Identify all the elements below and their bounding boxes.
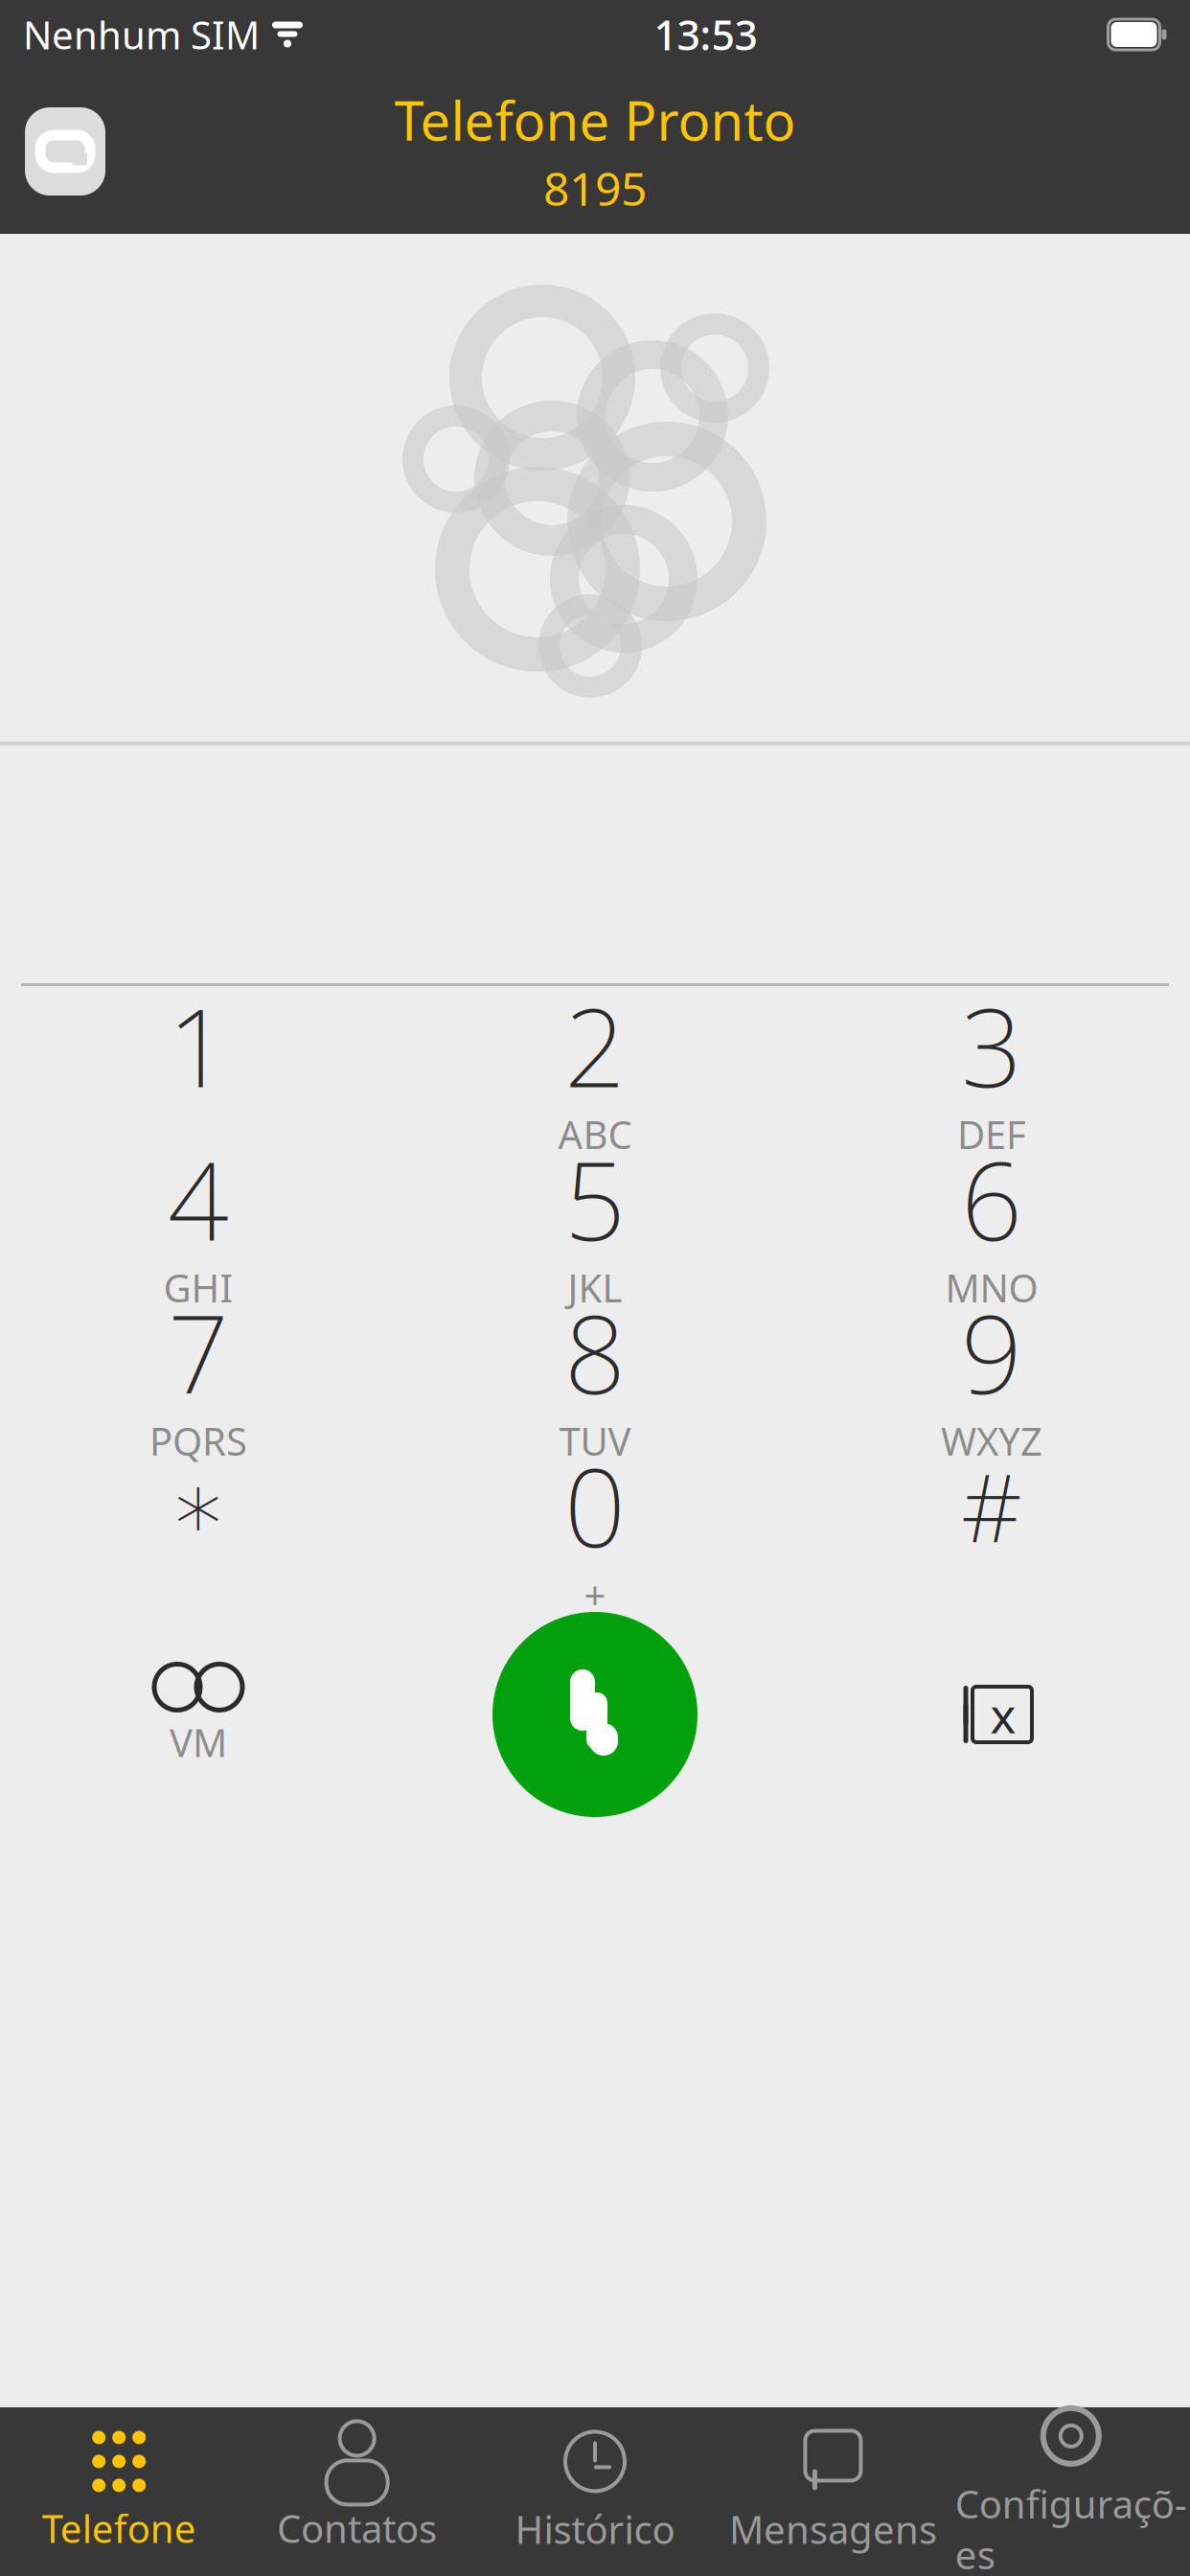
staticText: 9 xyxy=(961,1281,1022,1423)
staticText: MNO xyxy=(945,1262,1038,1313)
button[interactable]: Contatos xyxy=(238,2410,476,2573)
staticText: GHI xyxy=(163,1262,233,1313)
staticText: 7 xyxy=(168,1281,229,1423)
button[interactable]: 7 xyxy=(0,1293,397,1446)
button[interactable]: Ligar xyxy=(397,1599,793,1829)
staticText: 1 xyxy=(168,974,229,1117)
staticText: ∗ xyxy=(169,1452,228,1559)
staticText: Histórico xyxy=(515,2504,675,2554)
staticText: TUV xyxy=(559,1415,631,1466)
staticText: PQRS xyxy=(149,1415,247,1466)
staticText: 3 xyxy=(961,974,1022,1117)
staticText: ABC xyxy=(558,1109,632,1159)
button[interactable]: 4 xyxy=(0,1139,397,1293)
staticText: Contatos xyxy=(277,2503,437,2553)
staticText: 8 xyxy=(564,1281,626,1423)
button[interactable]: ∗ xyxy=(0,1446,397,1599)
button[interactable]: 1 xyxy=(0,986,397,1139)
button[interactable]: Correio de voz xyxy=(0,1619,397,1810)
button[interactable]: 5 xyxy=(397,1139,793,1293)
staticText: x xyxy=(990,1682,1016,1747)
staticText: 5 xyxy=(564,1128,626,1270)
staticText: 8195 xyxy=(543,157,647,218)
button[interactable]: 9 xyxy=(793,1293,1190,1446)
staticText: Telefone xyxy=(42,2503,196,2553)
button[interactable]: Conta xyxy=(19,105,111,197)
staticText: 6 xyxy=(961,1128,1022,1270)
staticText: DEF xyxy=(957,1109,1026,1159)
button[interactable]: 6 xyxy=(793,1139,1190,1293)
staticText: Mensagens xyxy=(729,2504,937,2554)
staticText: VM xyxy=(170,1717,227,1768)
staticText: Nenhum SIM xyxy=(23,9,260,60)
button[interactable]: 3 xyxy=(793,986,1190,1139)
button[interactable]: 2 xyxy=(397,986,793,1139)
button[interactable]: Apagar xyxy=(793,1619,1190,1810)
staticText: 13:53 xyxy=(654,7,757,62)
button[interactable]: Histórico xyxy=(476,2410,714,2573)
button[interactable]: Mensagens xyxy=(714,2410,952,2573)
staticText: 4 xyxy=(168,1128,229,1270)
staticText: 2 xyxy=(564,974,626,1117)
staticText: WXYZ xyxy=(941,1415,1042,1466)
button[interactable]: Telefone xyxy=(0,2410,238,2573)
staticText: Telefone Pronto xyxy=(394,84,796,156)
button[interactable]: 0 xyxy=(397,1446,793,1599)
staticText: 0 xyxy=(564,1434,626,1577)
staticText: Configurações xyxy=(955,2478,1187,2576)
button[interactable]: Configurações xyxy=(952,2410,1190,2573)
button[interactable]: # xyxy=(793,1446,1190,1599)
button[interactable]: 8 xyxy=(397,1293,793,1446)
staticText: # xyxy=(961,1443,1022,1568)
staticText: JKL xyxy=(568,1262,622,1313)
staticText: + xyxy=(584,1569,606,1619)
